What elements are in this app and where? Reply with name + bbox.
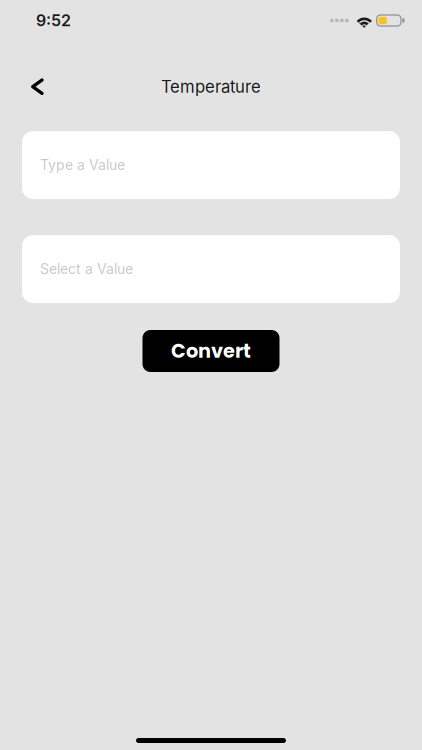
staticText: Select a Value [40, 260, 133, 277]
button[interactable]: Back [0, 68, 60, 105]
button[interactable]: Type a Value [22, 131, 400, 199]
staticText: Type a Value [40, 156, 125, 173]
button[interactable]: Convert [142, 330, 279, 372]
staticText: Convert [171, 337, 251, 365]
button[interactable]: Select a Value [22, 235, 400, 303]
staticText: Temperature [161, 77, 261, 97]
staticText: 9:52 [36, 11, 71, 30]
